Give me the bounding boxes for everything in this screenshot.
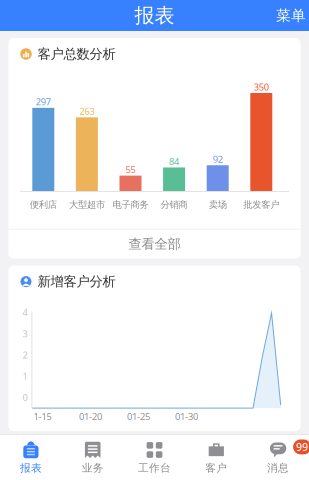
staticText: 01-25: [127, 410, 150, 422]
staticText: 1: [22, 370, 27, 382]
staticText: 3: [22, 327, 27, 340]
staticText: 84: [169, 155, 179, 167]
staticText: 0: [22, 391, 27, 404]
staticText: 55: [125, 163, 135, 176]
staticText: 263: [79, 105, 94, 117]
staticText: 4: [22, 306, 27, 318]
button[interactable]: 菜单: [266, 0, 309, 31]
staticText: 业务: [82, 461, 104, 474]
staticText: 报表: [134, 3, 174, 28]
button[interactable]: 报表: [0, 434, 62, 480]
staticText: 电子商务: [112, 199, 148, 210]
staticText: 分销商: [161, 199, 188, 210]
staticText: 卖场: [209, 199, 227, 210]
staticText: 消息: [267, 461, 289, 474]
staticText: 工作台: [138, 461, 171, 474]
staticText: 客户总数分析: [37, 46, 115, 62]
staticText: 350: [254, 81, 269, 93]
staticText: 批发客户: [243, 199, 279, 210]
staticText: 菜单: [276, 6, 306, 24]
staticText: 客户: [205, 461, 227, 474]
staticText: 92: [213, 153, 223, 165]
staticText: 2: [22, 349, 27, 361]
staticText: 297: [36, 95, 51, 108]
staticText: 查看全部: [128, 236, 180, 252]
button[interactable]: 业务: [62, 434, 124, 480]
staticText: 大型超市: [69, 199, 105, 210]
staticText: 99: [296, 440, 308, 454]
staticText: 01-30: [175, 410, 198, 422]
staticText: 01-20: [79, 410, 102, 422]
button[interactable]: 工作台: [124, 434, 185, 480]
staticText: 新增客户分析: [37, 273, 115, 290]
button[interactable]: 99: [247, 434, 309, 480]
button[interactable]: 客户: [185, 434, 247, 480]
button[interactable]: 查看全部: [8, 230, 300, 259]
staticText: 1-15: [33, 410, 51, 422]
staticText: 报表: [20, 461, 42, 474]
staticText: 便利店: [30, 199, 57, 210]
